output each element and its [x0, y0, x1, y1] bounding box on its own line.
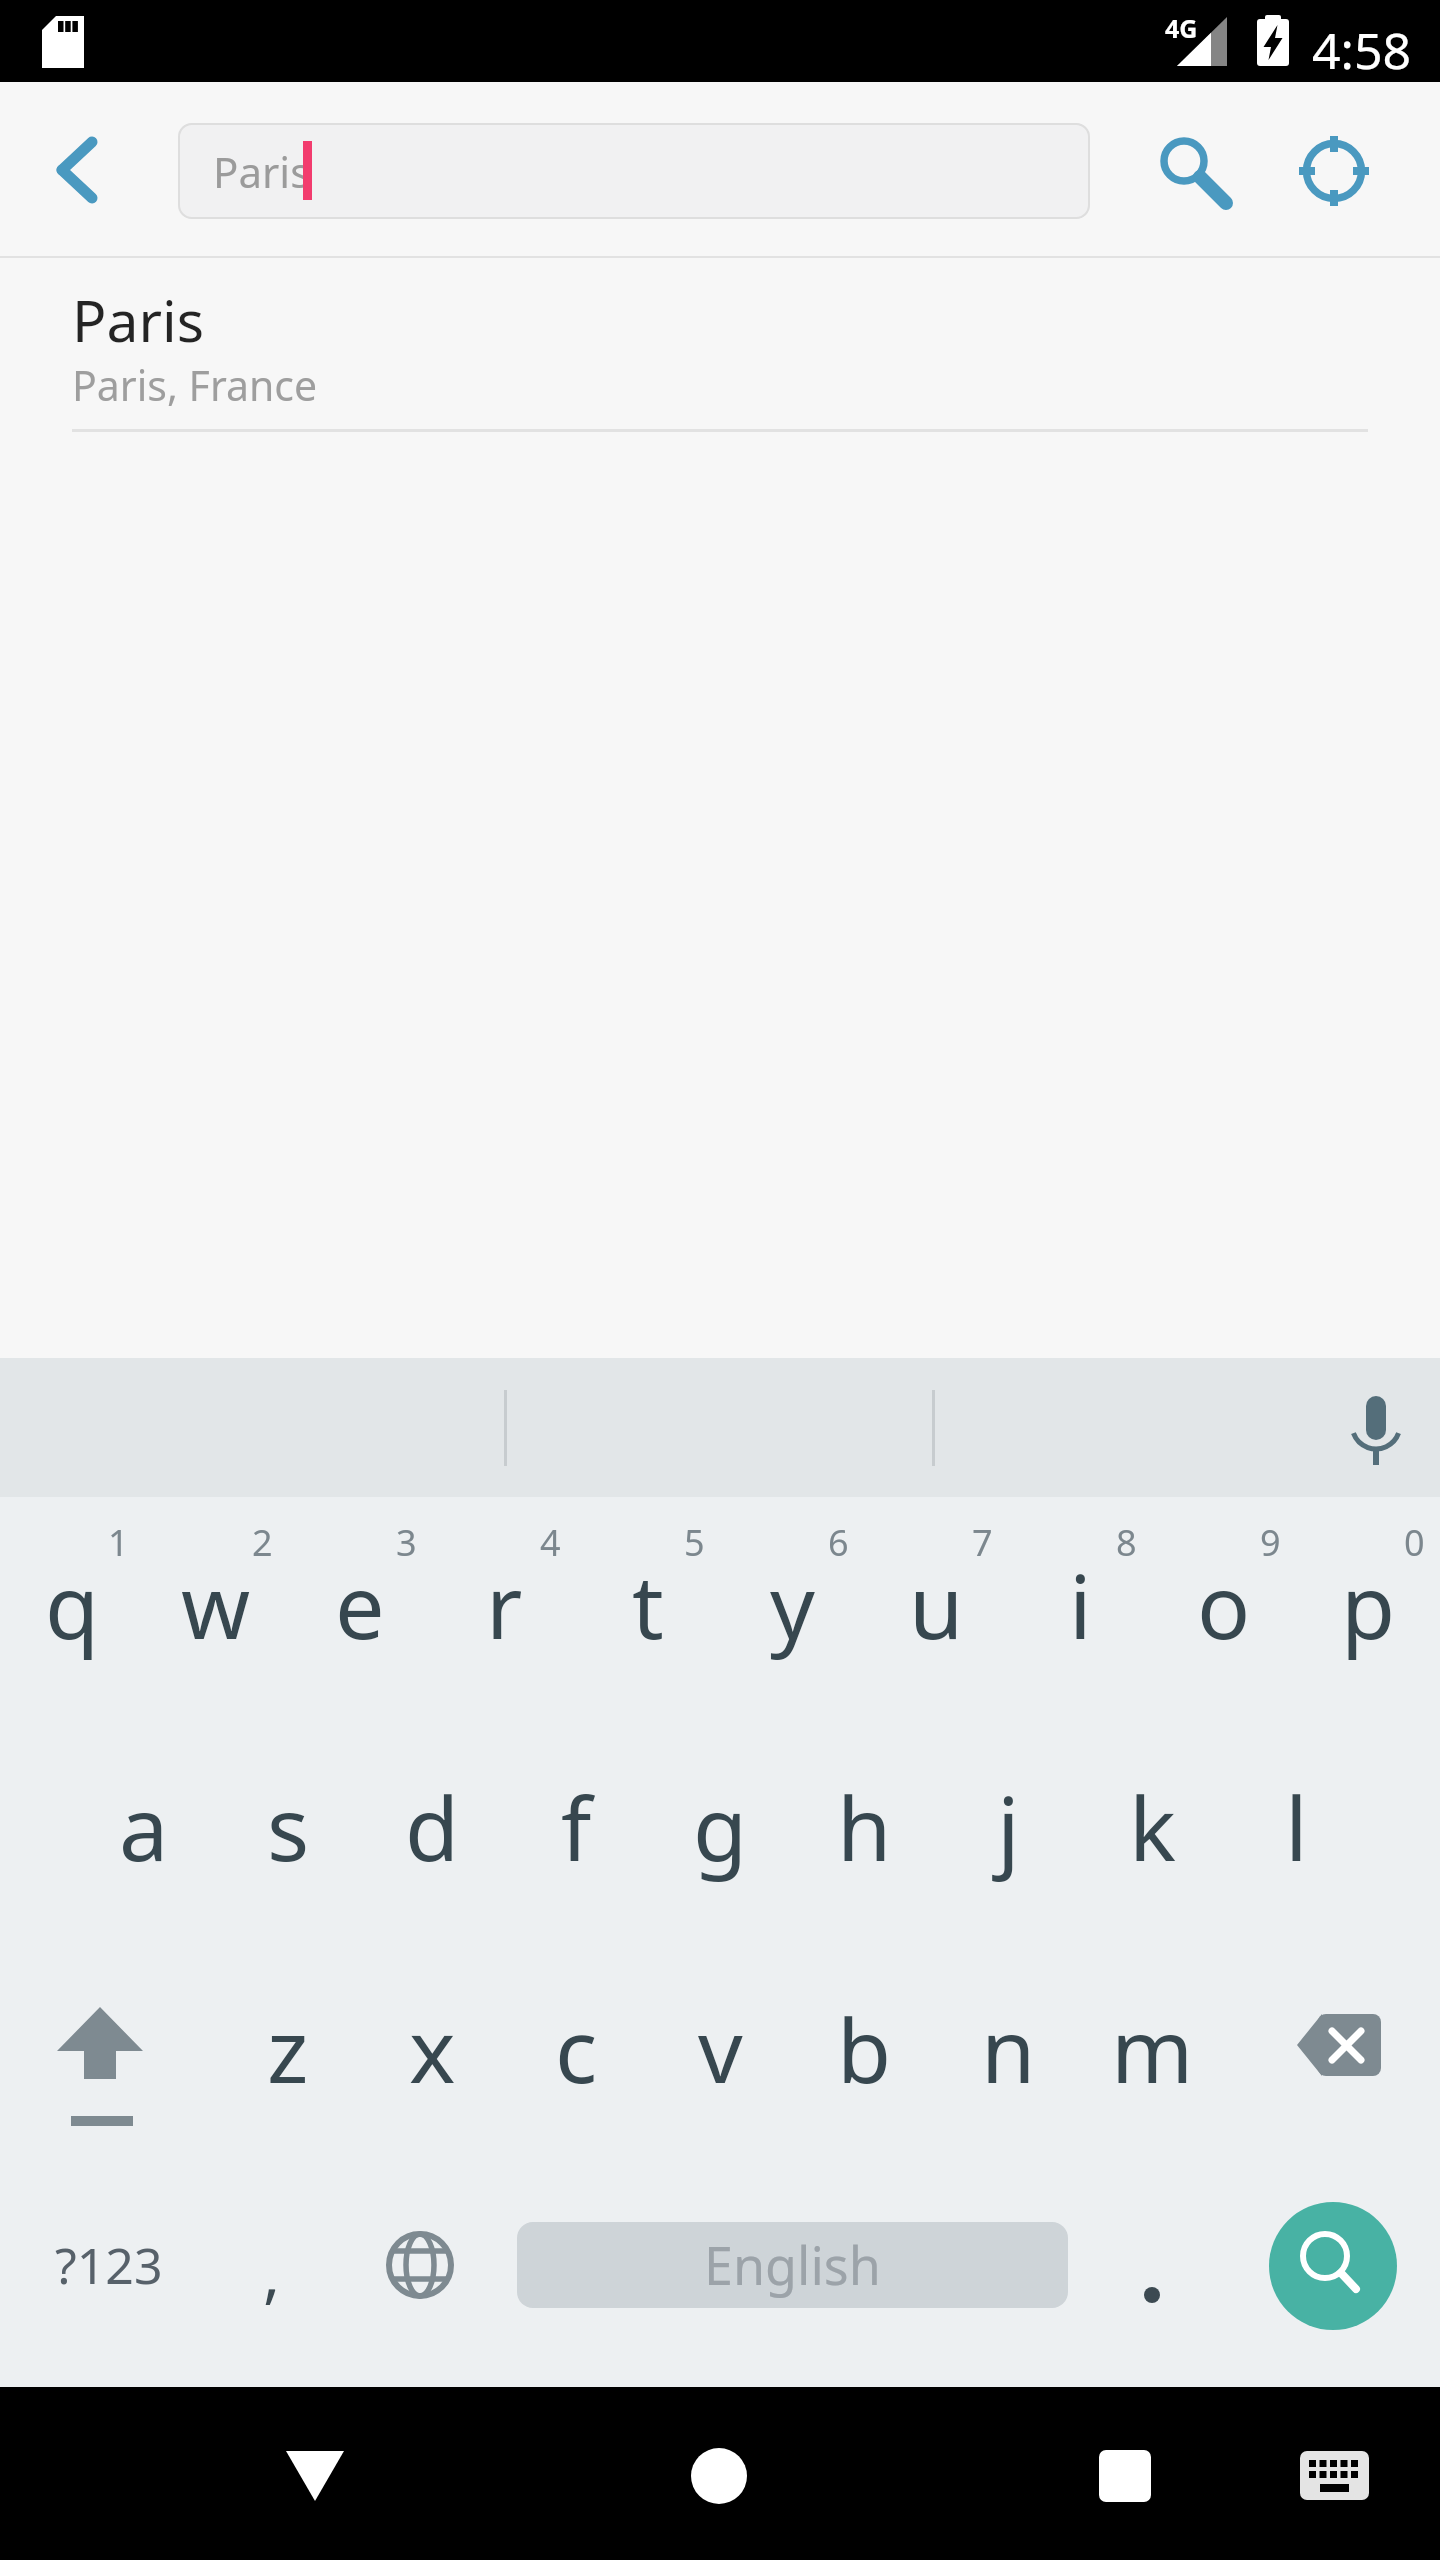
button[interactable]: t — [576, 1500, 720, 1710]
button[interactable] — [0, 1953, 216, 2163]
staticText: m — [1111, 1989, 1194, 2109]
button[interactable]: y — [720, 1500, 864, 1710]
staticText: j — [997, 1767, 1020, 1887]
staticText: 9 — [1260, 1518, 1281, 1567]
button[interactable] — [265, 2426, 365, 2526]
staticText: 1 — [108, 1518, 129, 1567]
staticText: s — [267, 1767, 310, 1887]
staticText: h — [837, 1767, 892, 1887]
staticText: u — [909, 1545, 964, 1665]
staticText: w — [181, 1545, 251, 1665]
button[interactable]: g — [648, 1722, 792, 1932]
staticText: 3 — [396, 1518, 417, 1567]
staticText: ?123 — [55, 2231, 163, 2299]
staticText: 5 — [684, 1518, 705, 1567]
staticText: 6 — [828, 1518, 849, 1567]
staticText: Paris — [213, 143, 311, 200]
button[interactable] — [0, 258, 1440, 432]
button[interactable] — [0, 2170, 216, 2380]
staticText: g — [693, 1767, 748, 1887]
button[interactable]: r — [432, 1500, 576, 1710]
button[interactable] — [1280, 119, 1390, 229]
button[interactable]: v — [648, 1944, 792, 2154]
staticText: f — [561, 1767, 592, 1887]
button[interactable]: m — [1080, 1944, 1224, 2154]
button[interactable] — [1328, 1362, 1424, 1492]
staticText: Paris, France — [72, 357, 318, 413]
button[interactable] — [1080, 2190, 1224, 2340]
staticText: 8 — [1116, 1518, 1137, 1567]
staticText: d — [405, 1767, 460, 1887]
button[interactable]: p — [1296, 1500, 1440, 1710]
staticText: o — [1197, 1545, 1251, 1665]
button[interactable] — [1135, 112, 1245, 222]
button[interactable]: , — [200, 2172, 344, 2372]
staticText: z — [267, 1989, 309, 2109]
staticText: t — [632, 1545, 664, 1665]
staticText: 2 — [252, 1518, 273, 1567]
staticText: i — [1069, 1545, 1092, 1665]
button[interactable]: i — [1008, 1500, 1152, 1710]
button[interactable] — [669, 2426, 769, 2526]
button[interactable]: c — [504, 1944, 648, 2154]
button[interactable] — [352, 2190, 492, 2340]
staticText: 7 — [972, 1518, 993, 1567]
staticText: e — [335, 1545, 385, 1665]
staticText: n — [981, 1989, 1036, 2109]
staticText: Paris — [72, 281, 205, 359]
staticText: k — [1129, 1767, 1176, 1887]
button[interactable] — [178, 123, 1090, 219]
button[interactable]: l — [1224, 1722, 1368, 1932]
button[interactable] — [1284, 2426, 1384, 2526]
staticText: q — [45, 1545, 100, 1665]
button[interactable]: a — [72, 1722, 216, 1932]
staticText: x — [409, 1989, 456, 2109]
button[interactable] — [517, 2222, 1068, 2308]
staticText: a — [119, 1767, 169, 1887]
button[interactable]: z — [216, 1944, 360, 2154]
staticText: b — [837, 1989, 892, 2109]
staticText: l — [1285, 1767, 1308, 1887]
button[interactable]: x — [360, 1944, 504, 2154]
staticText: 4G — [1165, 11, 1198, 45]
button[interactable]: h — [792, 1722, 936, 1932]
button[interactable]: o — [1152, 1500, 1296, 1710]
staticText: r — [486, 1545, 523, 1665]
button[interactable]: e — [288, 1500, 432, 1710]
staticText: v — [698, 1989, 743, 2109]
staticText: 4 — [540, 1518, 561, 1567]
button[interactable] — [30, 125, 125, 215]
button[interactable] — [1224, 1953, 1440, 2163]
button[interactable] — [1269, 2202, 1397, 2330]
button[interactable]: q — [0, 1500, 144, 1710]
button[interactable]: k — [1080, 1722, 1224, 1932]
button[interactable]: j — [936, 1722, 1080, 1932]
button[interactable]: n — [936, 1944, 1080, 2154]
button[interactable]: s — [216, 1722, 360, 1932]
button[interactable] — [1075, 2426, 1175, 2526]
button[interactable]: d — [360, 1722, 504, 1932]
button[interactable]: u — [864, 1500, 1008, 1710]
button[interactable]: w — [144, 1500, 288, 1710]
staticText: , — [263, 2229, 281, 2316]
staticText: c — [555, 1989, 598, 2109]
staticText: 4:58 — [1312, 16, 1412, 72]
staticText: y — [770, 1545, 815, 1665]
button[interactable]: f — [504, 1722, 648, 1932]
staticText: 0 — [1404, 1518, 1425, 1567]
staticText: English — [704, 2229, 881, 2300]
staticText: p — [1341, 1545, 1396, 1665]
button[interactable]: b — [792, 1944, 936, 2154]
